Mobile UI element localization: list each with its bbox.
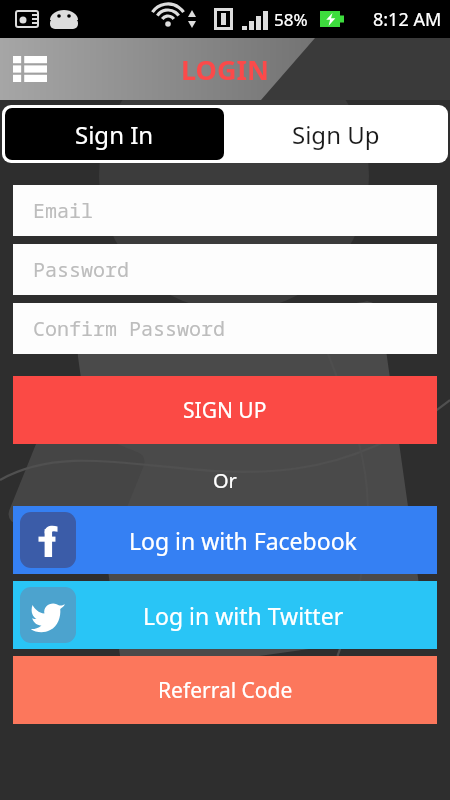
staticText: Log in with Twitter	[143, 600, 344, 631]
staticText: Confirm Password	[33, 315, 225, 342]
staticText: LOGIN	[181, 51, 269, 88]
staticText: SIGN UP	[183, 396, 267, 425]
staticText: Sign In	[75, 118, 154, 151]
button[interactable]: Menu	[6, 45, 54, 93]
button[interactable]: Log in with Twitter	[13, 581, 437, 649]
button[interactable]: Email	[13, 185, 437, 236]
staticText: Password	[33, 256, 129, 283]
staticText: Referral Code	[158, 676, 293, 705]
button[interactable]: Sign Up	[226, 108, 445, 160]
button[interactable]: Referral Code	[13, 656, 437, 724]
button[interactable]: SIGN UP	[13, 376, 437, 444]
staticText: Email	[33, 197, 93, 224]
staticText: Sign Up	[292, 118, 380, 151]
staticText: Log in with Facebook	[129, 525, 357, 556]
button[interactable]: Confirm Password	[13, 303, 437, 354]
button[interactable]: Log in with Facebook	[13, 506, 437, 574]
staticText: Or	[213, 467, 237, 494]
button[interactable]: Sign In	[5, 108, 224, 160]
button[interactable]: Password	[13, 244, 437, 295]
staticText: 58%	[274, 8, 308, 31]
staticText: 8:12 AM	[373, 7, 442, 32]
